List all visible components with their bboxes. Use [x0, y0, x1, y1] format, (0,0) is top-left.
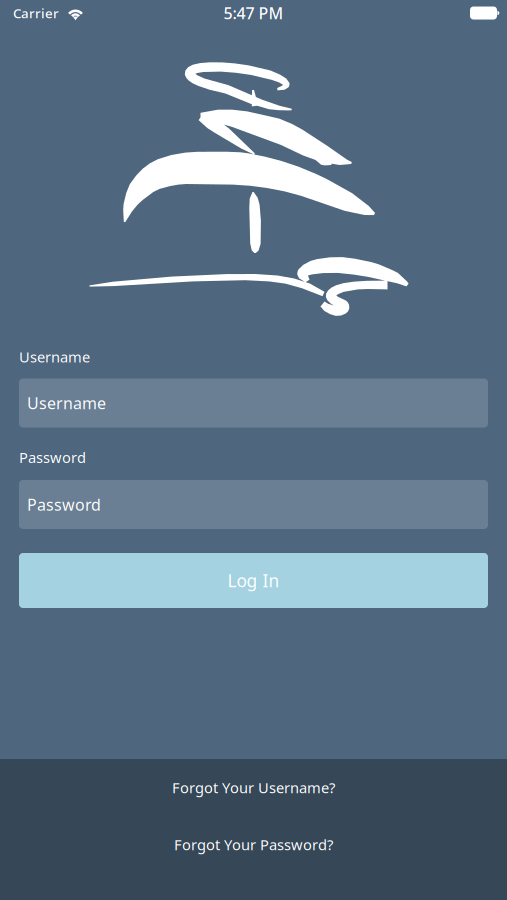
- staticText: Forgot Your Username?: [172, 778, 335, 797]
- staticText: Password: [27, 494, 101, 515]
- staticText: Forgot Your Password?: [174, 835, 333, 854]
- staticText: Password: [19, 447, 86, 467]
- staticText: Carrier: [13, 4, 59, 22]
- button[interactable]: Forgot Your Password?: [0, 816, 507, 873]
- staticText: 5:47 PM: [223, 2, 283, 24]
- staticText: Username: [27, 392, 106, 414]
- button[interactable]: Log In: [19, 553, 488, 608]
- button[interactable]: Forgot Your Username?: [0, 759, 507, 816]
- staticText: Username: [19, 347, 90, 366]
- staticText: Log In: [227, 569, 279, 592]
